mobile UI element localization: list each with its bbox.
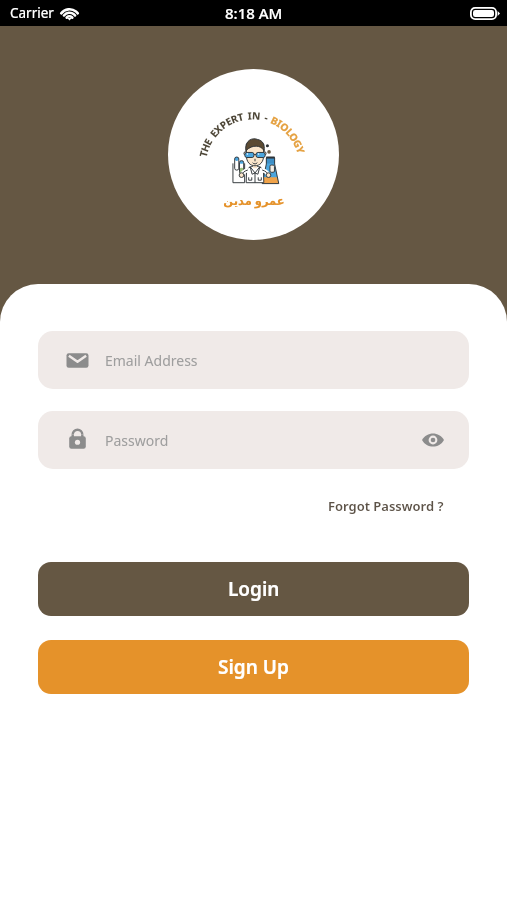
button[interactable]: Show password <box>411 418 455 462</box>
button[interactable]: Sign Up <box>38 640 469 694</box>
staticText: Sign Up <box>218 654 289 680</box>
staticText: Email Address <box>105 351 198 370</box>
button[interactable]: Email Address <box>38 331 469 389</box>
staticText: Login <box>228 576 280 602</box>
staticText: Carrier <box>10 4 54 22</box>
staticText: Forgot Password ? <box>328 497 444 515</box>
staticText: 8:18 AM <box>225 3 283 23</box>
button[interactable]: Password <box>38 411 469 469</box>
staticText: Password <box>105 431 169 450</box>
button[interactable]: Login <box>38 562 469 616</box>
button[interactable]: Forgot Password ? <box>322 493 450 519</box>
staticText: عمرو مدين <box>223 193 285 209</box>
